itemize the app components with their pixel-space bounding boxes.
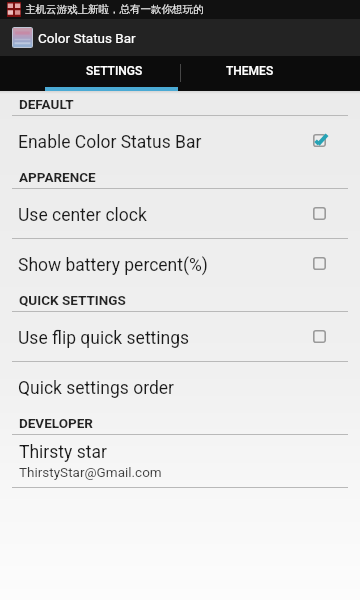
staticText: Show battery percent(%)	[18, 255, 313, 276]
staticText: QUICK SETTINGS	[19, 292, 126, 308]
staticText: ThirstyStar@Gmail.com	[19, 464, 162, 480]
button[interactable]: Use center clock	[0, 189, 360, 238]
button[interactable]: Enable Color Status Bar	[0, 116, 360, 165]
staticText: THEMES	[226, 64, 274, 78]
staticText: Use center clock	[18, 205, 313, 226]
staticText: Enable Color Status Bar	[18, 132, 313, 153]
button[interactable]: Show battery percent(%)	[0, 239, 360, 288]
button[interactable]: Thirsty star	[0, 435, 360, 487]
button[interactable]: Quick settings order	[0, 362, 360, 411]
button[interactable]: Ad	[0, 0, 360, 19]
staticText: Color Status Bar	[38, 30, 136, 46]
staticText: 主机云游戏上新啦，总有一款你想玩的	[25, 3, 204, 16]
staticText: DEVELOPER	[19, 415, 93, 431]
staticText: Use flip quick settings	[18, 328, 313, 349]
staticText: Quick settings order	[18, 378, 360, 399]
other: Ad	[7, 2, 21, 17]
button[interactable]: THEMES	[180, 56, 360, 91]
staticText: Thirsty star	[19, 442, 107, 463]
button[interactable]: Use flip quick settings	[0, 312, 360, 361]
other: App icon	[13, 28, 32, 47]
staticText: DEFAULT	[19, 96, 74, 112]
button[interactable]: SETTINGS	[0, 56, 180, 91]
staticText: SETTINGS	[86, 64, 143, 78]
staticText: APPARENCE	[19, 169, 96, 185]
